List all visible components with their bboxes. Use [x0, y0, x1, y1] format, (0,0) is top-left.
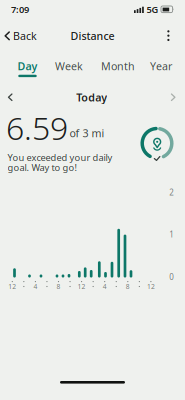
staticText: 2 [169, 187, 174, 198]
button[interactable]: Today [76, 90, 107, 104]
staticText: Distance [70, 29, 114, 43]
staticText: 8 [56, 282, 60, 291]
button[interactable]: Day [10, 59, 45, 77]
staticText: Day [17, 59, 37, 73]
staticText: 7:09 [11, 3, 29, 16]
button[interactable]: Previous day [0, 90, 13, 104]
staticText: You exceeded your daily [7, 151, 112, 164]
staticText: Week [55, 59, 83, 73]
staticText: 0 [169, 272, 174, 282]
button[interactable]: Next day [170, 90, 185, 104]
staticText: Month [101, 59, 135, 73]
staticText: 4 [33, 282, 37, 291]
staticText: 5G [146, 3, 158, 16]
staticText: 4 [103, 282, 107, 291]
button[interactable]: More options [167, 28, 185, 43]
staticText: Back [13, 29, 37, 43]
button[interactable]: Back [0, 25, 37, 47]
button[interactable]: Year [143, 59, 179, 77]
staticText: Year [150, 59, 172, 73]
button[interactable]: Week [45, 59, 93, 77]
staticText: Today [76, 90, 107, 104]
staticText: 12 [78, 282, 86, 291]
button[interactable]: Month [93, 59, 143, 77]
staticText: 8 [126, 282, 130, 291]
staticText: 12 [147, 282, 155, 291]
staticText: of 3 mi [69, 126, 104, 140]
staticText: goal. Way to go! [7, 161, 77, 174]
staticText: 6.59 [6, 106, 68, 149]
staticText: 1 [169, 229, 174, 240]
staticText: 12 [8, 282, 16, 291]
